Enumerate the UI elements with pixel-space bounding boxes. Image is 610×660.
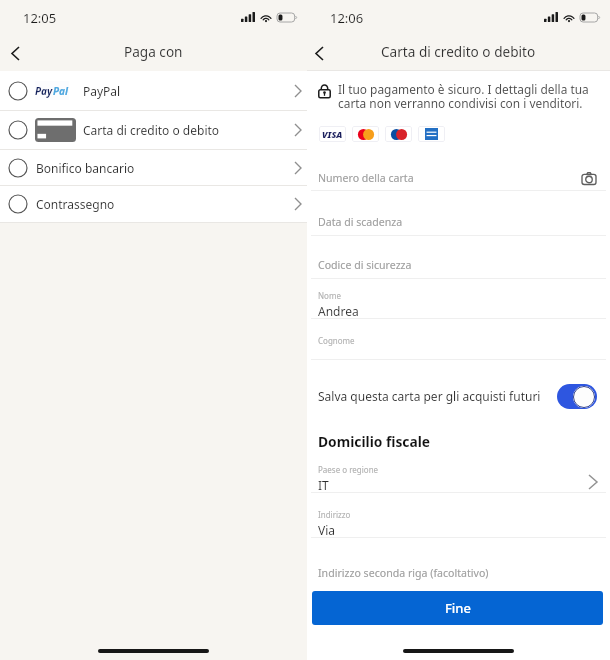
staticText: Salva questa carta per gli acquisti futu… xyxy=(318,388,541,404)
staticText: 12:05 xyxy=(23,9,57,27)
staticText: Pay xyxy=(35,84,53,98)
staticText: Carta di credito o debito xyxy=(381,42,536,61)
button[interactable]: Carta di credito o debito xyxy=(0,111,307,149)
other: Scan card xyxy=(582,172,596,185)
staticText: Il tuo pagamento è sicuro. I dettagli de… xyxy=(338,81,605,112)
staticText: Pal xyxy=(53,84,69,98)
button[interactable]: Nome xyxy=(307,290,610,319)
staticText: PayPal xyxy=(83,83,121,99)
staticText: Bonifico bancario xyxy=(36,160,135,176)
staticText: IT xyxy=(318,477,329,493)
button[interactable]: Back xyxy=(0,31,34,70)
staticText: Fine xyxy=(445,599,471,617)
button[interactable]: Indirizzo seconda riga (facoltativo) xyxy=(307,562,610,584)
staticText: 12:06 xyxy=(330,9,364,27)
button[interactable]: Indirizzo xyxy=(307,509,610,538)
button[interactable]: Paese o regione xyxy=(307,464,610,493)
button[interactable]: Contrassegno xyxy=(0,186,307,222)
button[interactable]: Salva questa carta per gli acquisti futu… xyxy=(307,383,610,409)
staticText: Contrassegno xyxy=(36,196,115,212)
button[interactable]: Bonifico bancario xyxy=(0,150,307,185)
button[interactable]: Numero della carta xyxy=(307,167,610,189)
button[interactable]: Back xyxy=(307,31,341,70)
staticText: Indirizzo seconda riga (facoltativo) xyxy=(318,566,489,580)
staticText: Numero della carta xyxy=(318,171,414,185)
button[interactable]: Codice di sicurezza xyxy=(307,254,610,276)
button[interactable]: Data di scadenza xyxy=(307,211,610,233)
button[interactable]: Cognome xyxy=(307,334,610,346)
button[interactable]: Pay xyxy=(0,71,307,110)
staticText: Nome xyxy=(318,290,341,301)
staticText: Via xyxy=(318,522,336,538)
staticText: Codice di sicurezza xyxy=(318,258,412,272)
staticText: Andrea xyxy=(318,303,359,319)
staticText: Domicilio fiscale xyxy=(318,432,431,451)
staticText: Paga con xyxy=(124,42,183,61)
button[interactable]: Fine xyxy=(312,591,603,625)
staticText: Data di scadenza xyxy=(318,215,403,229)
staticText: Indirizzo xyxy=(318,509,351,520)
staticText: Cognome xyxy=(318,335,355,346)
staticText: Carta di credito o debito xyxy=(83,122,220,138)
staticText: Paese o regione xyxy=(318,464,379,475)
staticText: VISA xyxy=(322,128,343,140)
